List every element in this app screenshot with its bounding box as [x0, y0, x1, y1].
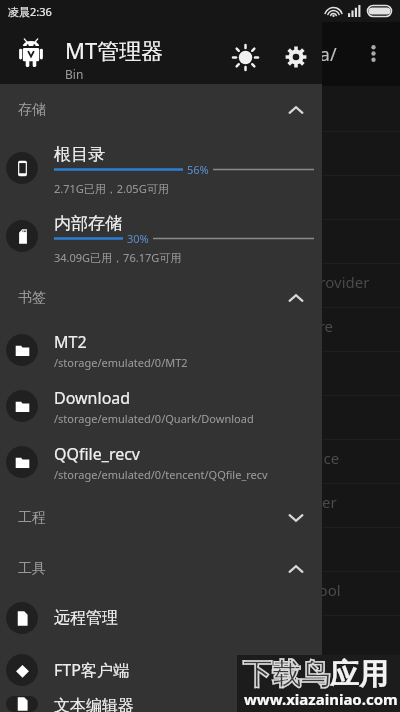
button[interactable]: 书签	[0, 273, 322, 322]
staticText: 下载鸟	[243, 656, 330, 693]
button[interactable]: 根目录	[0, 136, 322, 199]
button[interactable]: Brightness	[227, 39, 263, 75]
staticText: /storage/emulated/0/MT2	[54, 355, 188, 370]
staticText: 凌晨2:36	[8, 4, 52, 19]
button[interactable]: 工程	[0, 490, 322, 546]
button[interactable]: 远程管理	[0, 592, 322, 644]
staticText: Download	[54, 387, 131, 409]
staticText: com.ex.	[140, 360, 195, 380]
staticText: 文本编辑器	[54, 696, 134, 712]
staticText: 工具	[18, 560, 46, 578]
staticText: com.android.downloadsprovider	[140, 272, 370, 292]
staticText: com.sec.app.PythonLineTool	[140, 580, 341, 600]
button[interactable]: More options	[356, 36, 390, 70]
staticText: 30%	[127, 231, 149, 246]
button[interactable]: 工具	[0, 546, 322, 592]
staticText: MT管理器	[65, 35, 164, 65]
staticText: 应用	[330, 656, 388, 693]
staticText: 存储	[18, 101, 46, 119]
staticText: 书签	[18, 289, 46, 307]
button[interactable]: Settings	[278, 39, 314, 75]
staticText: 根目录	[54, 144, 105, 165]
staticText: www.xiazainiao.com	[244, 689, 398, 709]
staticText: com.alibaba.rimet.AliService	[140, 448, 340, 468]
staticText: 下载鸟	[243, 656, 330, 693]
staticText: /storage/emulated/0/Quark/Download	[54, 411, 254, 426]
button[interactable]: App icon	[19, 38, 43, 68]
staticText: com.android.mediaprovider	[140, 492, 337, 512]
staticText: /storage/emulated/0/Android/data/	[36, 42, 337, 67]
staticText: 56%	[187, 162, 209, 177]
button[interactable]: 内部存储	[0, 199, 322, 273]
staticText: 2.71G已用，2.05G可用	[54, 181, 169, 196]
button[interactable]: QQfile_recv	[0, 434, 322, 490]
staticText: FTP客户端	[54, 659, 129, 681]
button[interactable]: 存储	[0, 84, 322, 136]
staticText: 34.09G已用，76.17G可用	[54, 250, 182, 265]
staticText: 内部存储	[54, 213, 122, 234]
button[interactable]: MT2	[0, 322, 322, 378]
button[interactable]: FTP客户端	[0, 644, 322, 696]
staticText: com.google.backup.restore	[140, 316, 334, 336]
staticText: 工程	[18, 509, 46, 527]
staticText: Bin	[65, 66, 84, 82]
button[interactable]: 文本编辑器	[0, 696, 322, 712]
staticText: com.android.chromee	[140, 184, 296, 204]
staticText: 远程管理	[54, 608, 118, 628]
staticText: /storage/emulated/0/tencent/QQfile_recv	[54, 467, 268, 482]
button[interactable]: Download	[0, 378, 322, 434]
staticText: MT2	[54, 331, 87, 353]
staticText: QQfile_recv	[54, 443, 141, 465]
